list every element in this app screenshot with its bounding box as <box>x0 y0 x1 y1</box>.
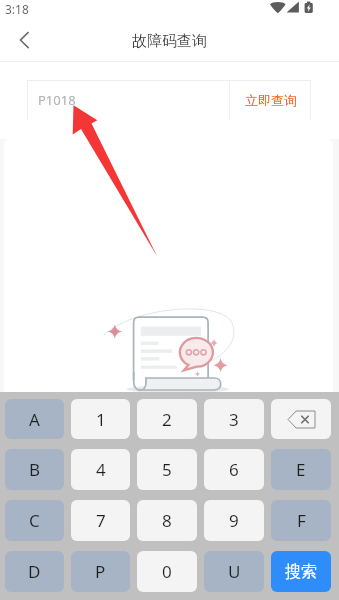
button[interactable]: U <box>204 551 264 592</box>
other: Delete <box>271 399 331 439</box>
button[interactable]: 0 <box>137 551 197 592</box>
staticText: P <box>95 560 106 583</box>
button[interactable]: Back <box>0 22 46 61</box>
staticText: 7 <box>96 509 106 532</box>
button[interactable]: 立即查询 <box>230 80 311 120</box>
button[interactable]: E <box>271 449 331 490</box>
staticText: 1 <box>96 408 106 431</box>
staticText: P1018 <box>38 91 76 109</box>
staticText: 3:18 <box>5 1 29 17</box>
staticText: 6 <box>229 458 239 481</box>
button[interactable]: 7 <box>71 500 130 541</box>
staticText: 立即查询 <box>245 92 297 108</box>
staticText: D <box>28 560 41 583</box>
staticText: A <box>29 408 40 431</box>
button[interactable]: 6 <box>204 449 264 490</box>
staticText: 2 <box>162 408 172 431</box>
staticText: 0 <box>162 560 172 583</box>
staticText: 5 <box>162 458 172 481</box>
staticText: 4 <box>96 458 106 481</box>
staticText: E <box>296 458 306 481</box>
button[interactable]: 1 <box>71 399 130 439</box>
staticText: B <box>29 458 41 481</box>
staticText: 9 <box>229 509 239 532</box>
button[interactable]: 3 <box>204 399 264 439</box>
button[interactable]: C <box>5 500 64 541</box>
button[interactable]: B <box>5 449 64 490</box>
button[interactable]: 9 <box>204 500 264 541</box>
button[interactable]: 搜索 <box>271 551 331 592</box>
button[interactable]: 8 <box>137 500 197 541</box>
button[interactable]: 2 <box>137 399 197 439</box>
button[interactable]: P1018 <box>27 80 229 120</box>
button[interactable]: 5 <box>137 449 197 490</box>
staticText: 8 <box>162 509 172 532</box>
staticText: C <box>29 509 40 532</box>
button[interactable]: P <box>71 551 130 592</box>
staticText: U <box>228 560 241 583</box>
button[interactable]: F <box>271 500 331 541</box>
staticText: 3 <box>229 408 239 431</box>
button[interactable]: Delete <box>271 399 331 439</box>
staticText: 搜索 <box>285 562 317 582</box>
staticText: F <box>297 509 306 532</box>
button[interactable]: A <box>5 399 64 439</box>
staticText: 故障码查询 <box>132 32 207 51</box>
button[interactable]: 4 <box>71 449 130 490</box>
button[interactable]: D <box>5 551 64 592</box>
